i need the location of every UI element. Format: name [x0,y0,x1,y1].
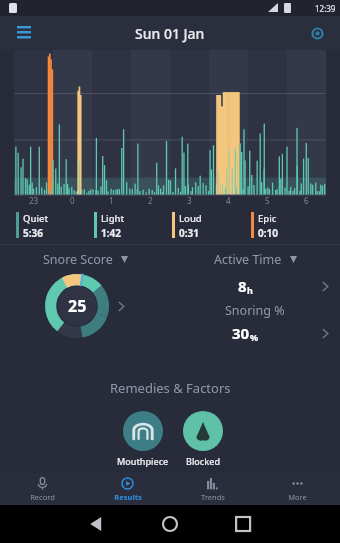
staticText: % [250,331,259,343]
staticText: 4 [226,195,231,206]
staticText: 2 [148,195,153,206]
staticText: 23 [29,195,39,206]
staticText: Loud [179,212,202,225]
staticText: Trends [201,492,225,502]
staticText: 12:39 [315,3,336,14]
staticText: Record [30,492,55,502]
staticText: More [288,492,307,502]
button[interactable]: Record [0,473,85,505]
staticText: 3 [187,195,192,206]
button[interactable]: Mouthpiece [117,411,169,467]
staticText: Light [101,212,125,225]
button[interactable]: More [255,473,340,505]
button[interactable]: Results [85,473,170,505]
staticText: Quiet [23,212,49,225]
staticText: h [247,284,253,296]
staticText: 8 [238,276,247,296]
staticText: Snoring % [225,302,285,319]
staticText: 5:36 [23,226,43,240]
staticText: Snore Score [43,251,113,268]
staticText: 30 [232,323,250,343]
staticText: 0:10 [258,226,278,240]
button[interactable]: Active Time [214,251,297,268]
button[interactable]: Quiet [16,212,94,240]
staticText: Sun 01 Jan [135,24,205,43]
button[interactable]: Loud [172,212,251,240]
button[interactable]: 8 [170,276,340,296]
button[interactable]: Remedies & Factors [110,379,231,397]
staticText: 1 [109,195,114,206]
staticText: 6 [304,195,309,206]
staticText: Results [114,492,142,502]
button[interactable]: Settings [304,20,330,46]
staticText: 25 [68,295,87,317]
button[interactable]: Menu [10,19,38,47]
staticText: 0 [70,195,75,206]
staticText: 0:31 [179,226,199,240]
staticText: 1:42 [101,226,121,240]
button[interactable]: Snore Score [43,251,128,268]
staticText: Blocked [186,455,221,467]
staticText: Active Time [214,251,282,268]
button[interactable]: Trends [170,473,255,505]
button[interactable]: 30 [170,323,340,343]
button[interactable]: Blocked [183,411,223,467]
button[interactable]: Epic [251,212,330,240]
button[interactable]: Light [94,212,172,240]
staticText: Epic [258,212,277,225]
button[interactable]: Snore score 25 [45,274,109,338]
staticText: 5 [265,195,270,206]
staticText: Mouthpiece [117,455,169,467]
